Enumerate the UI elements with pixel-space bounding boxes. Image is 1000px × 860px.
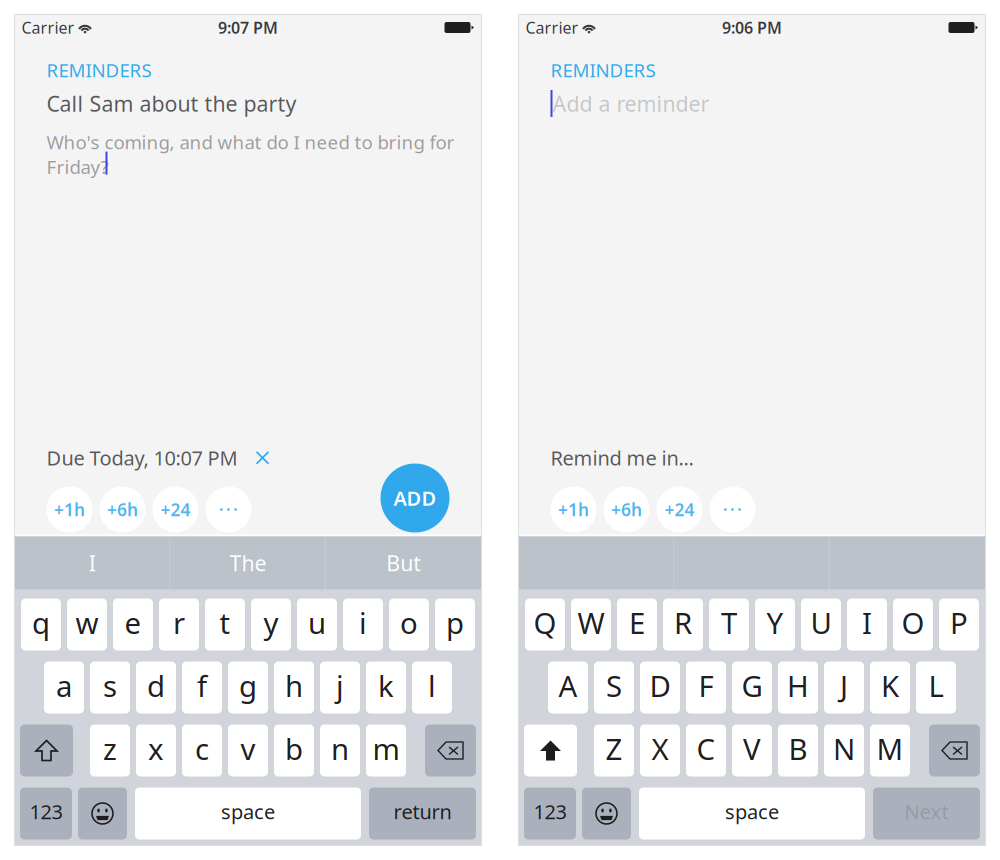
- button[interactable]: Emoji: [78, 787, 127, 839]
- button[interactable]: H: [778, 661, 818, 713]
- button[interactable]: More options: [205, 486, 251, 532]
- button[interactable]: x: [136, 724, 176, 776]
- button[interactable]: m: [366, 724, 406, 776]
- button[interactable]: n: [320, 724, 360, 776]
- button[interactable]: 123: [20, 787, 72, 839]
- button[interactable]: i: [343, 598, 383, 650]
- button[interactable]: Suggestion: [518, 536, 674, 589]
- button[interactable]: h: [274, 661, 314, 713]
- button[interactable]: P: [939, 598, 979, 650]
- staticText: a: [56, 666, 72, 705]
- staticText: e: [124, 603, 141, 642]
- button[interactable]: T: [709, 598, 749, 650]
- button[interactable]: Suggestion But: [326, 536, 481, 589]
- button[interactable]: C: [686, 724, 726, 776]
- staticText: T: [721, 603, 737, 642]
- button[interactable]: Clear due date: [237, 446, 287, 470]
- button[interactable]: I: [847, 598, 887, 650]
- button[interactable]: Z: [594, 724, 634, 776]
- staticText: H: [787, 666, 809, 705]
- button[interactable]: Emoji: [582, 787, 631, 839]
- button[interactable]: +1h: [46, 486, 92, 532]
- staticText: Due Today, 10:07 PM: [46, 444, 237, 471]
- button[interactable]: O: [893, 598, 933, 650]
- staticText: M: [876, 729, 903, 768]
- button[interactable]: Suggestion I: [14, 536, 170, 589]
- button[interactable]: u: [297, 598, 337, 650]
- button[interactable]: space: [639, 787, 865, 839]
- button[interactable]: Y: [755, 598, 795, 650]
- button[interactable]: q: [21, 598, 61, 650]
- button[interactable]: f: [182, 661, 222, 713]
- button[interactable]: z: [90, 724, 130, 776]
- button[interactable]: Delete: [929, 724, 980, 776]
- button[interactable]: Suggestion: [674, 536, 830, 589]
- button[interactable]: X: [640, 724, 680, 776]
- button[interactable]: Shift: [20, 724, 73, 776]
- button[interactable]: M: [870, 724, 910, 776]
- staticText: +6h: [107, 498, 138, 521]
- button[interactable]: +6h: [99, 486, 145, 532]
- button[interactable]: w: [67, 598, 107, 650]
- button[interactable]: +6h: [603, 486, 649, 532]
- staticText: G: [741, 666, 762, 705]
- button[interactable]: +1h: [550, 486, 596, 532]
- button[interactable]: D: [640, 661, 680, 713]
- button[interactable]: l: [412, 661, 452, 713]
- staticText: L: [928, 666, 943, 705]
- button[interactable]: E: [617, 598, 657, 650]
- button[interactable]: s: [90, 661, 130, 713]
- staticText: ADD: [393, 485, 436, 511]
- button[interactable]: return: [369, 787, 476, 839]
- button[interactable]: Delete: [425, 724, 476, 776]
- button[interactable]: Next: [873, 787, 980, 839]
- button[interactable]: B: [778, 724, 818, 776]
- button[interactable]: A: [548, 661, 588, 713]
- staticText: R: [674, 603, 692, 642]
- button[interactable]: U: [801, 598, 841, 650]
- button[interactable]: b: [274, 724, 314, 776]
- button[interactable]: More options: [709, 486, 755, 532]
- button[interactable]: Suggestion The: [170, 536, 326, 589]
- staticText: I: [862, 603, 872, 642]
- button[interactable]: F: [686, 661, 726, 713]
- button[interactable]: G: [732, 661, 772, 713]
- button[interactable]: 123: [524, 787, 576, 839]
- button[interactable]: e: [113, 598, 153, 650]
- staticText: q: [32, 603, 50, 642]
- button[interactable]: S: [594, 661, 634, 713]
- button[interactable]: +24: [152, 486, 198, 532]
- staticText: m: [372, 729, 399, 768]
- staticText: A: [558, 666, 577, 705]
- button[interactable]: d: [136, 661, 176, 713]
- button[interactable]: W: [571, 598, 611, 650]
- button[interactable]: space: [135, 787, 361, 839]
- button[interactable]: N: [824, 724, 864, 776]
- staticText: l: [428, 666, 436, 705]
- button[interactable]: p: [435, 598, 475, 650]
- button[interactable]: t: [205, 598, 245, 650]
- button[interactable]: a: [44, 661, 84, 713]
- button[interactable]: c: [182, 724, 222, 776]
- button[interactable]: Shift: [524, 724, 577, 776]
- button[interactable]: V: [732, 724, 772, 776]
- button[interactable]: K: [870, 661, 910, 713]
- button[interactable]: y: [251, 598, 291, 650]
- button[interactable]: j: [320, 661, 360, 713]
- button[interactable]: Q: [525, 598, 565, 650]
- button[interactable]: g: [228, 661, 268, 713]
- staticText: O: [901, 603, 924, 642]
- button[interactable]: ADD: [380, 463, 449, 532]
- button[interactable]: k: [366, 661, 406, 713]
- staticText: 9:07 PM: [218, 17, 278, 38]
- button[interactable]: R: [663, 598, 703, 650]
- button[interactable]: +24: [656, 486, 702, 532]
- button[interactable]: J: [824, 661, 864, 713]
- staticText: n: [331, 729, 349, 768]
- button[interactable]: r: [159, 598, 199, 650]
- button[interactable]: o: [389, 598, 429, 650]
- button[interactable]: Suggestion: [830, 536, 985, 589]
- button[interactable]: v: [228, 724, 268, 776]
- button[interactable]: L: [916, 661, 956, 713]
- staticText: C: [696, 729, 715, 768]
